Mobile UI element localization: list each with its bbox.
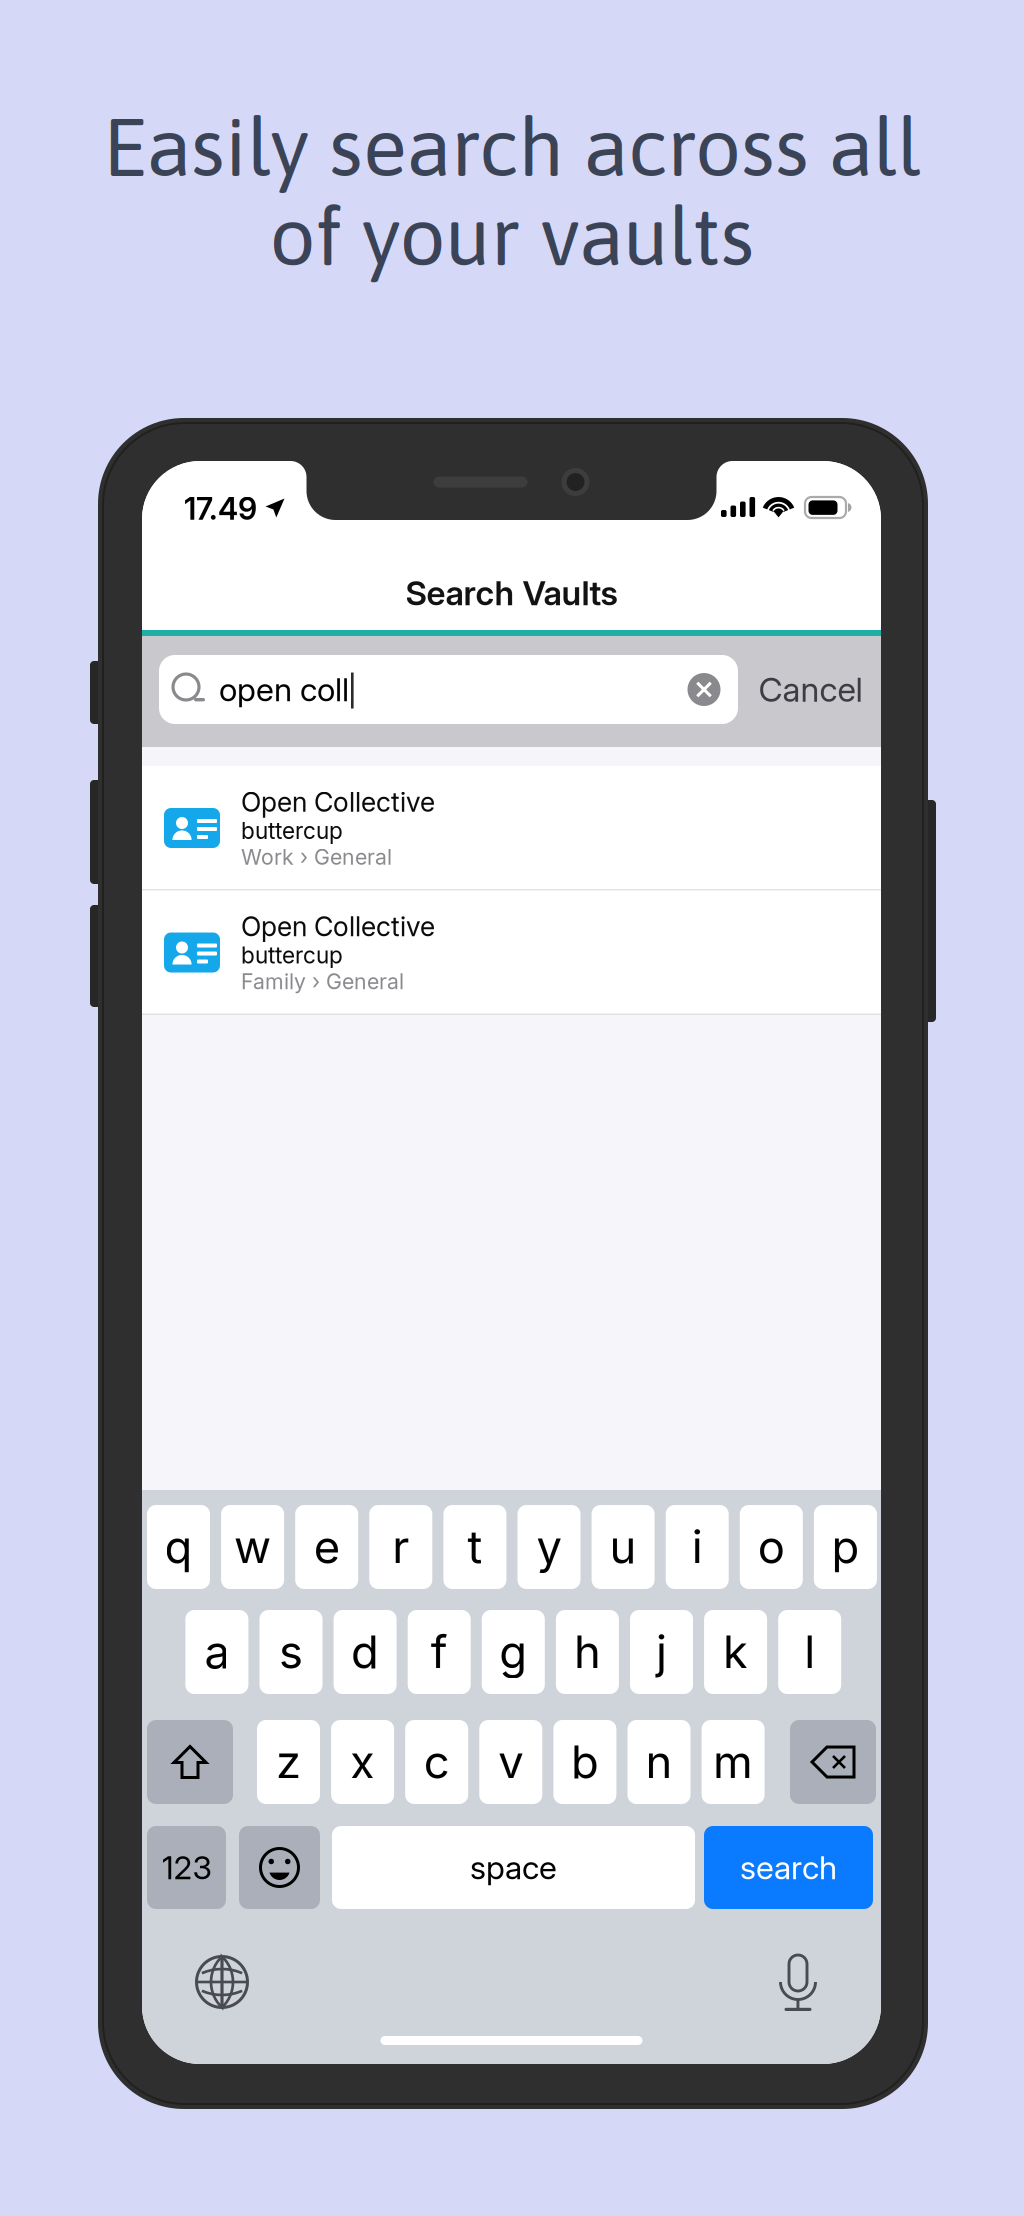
button[interactable]: Next keyboard: [196, 1956, 248, 2008]
staticText: l: [804, 1625, 815, 1679]
button[interactable]: space: [332, 1826, 695, 1909]
button[interactable]: n: [627, 1720, 690, 1804]
button[interactable]: m: [702, 1720, 765, 1804]
staticText: space: [470, 1848, 557, 1887]
button[interactable]: q: [147, 1505, 210, 1589]
staticText: u: [610, 1520, 637, 1574]
button[interactable]: search: [704, 1826, 873, 1909]
staticText: 123: [161, 1848, 211, 1887]
staticText: of your vaults: [269, 189, 754, 282]
button[interactable]: u: [592, 1505, 655, 1589]
button[interactable]: Emoji keyboard: [239, 1826, 320, 1909]
staticText: v: [498, 1735, 523, 1789]
button[interactable]: Cancel: [744, 655, 877, 724]
button[interactable]: t: [443, 1505, 506, 1589]
button[interactable]: w: [221, 1505, 284, 1589]
staticText: Family › General: [241, 968, 404, 994]
staticText: e: [314, 1520, 340, 1574]
staticText: b: [571, 1735, 599, 1789]
staticText: m: [713, 1735, 753, 1789]
staticText: z: [276, 1735, 301, 1789]
staticText: buttercup: [241, 817, 343, 844]
staticText: s: [279, 1625, 303, 1679]
staticText: r: [392, 1520, 409, 1574]
staticText: Work › General: [241, 844, 392, 870]
button[interactable]: i: [666, 1505, 729, 1589]
staticText: o: [758, 1520, 785, 1574]
staticText: j: [656, 1625, 667, 1679]
button[interactable]: r: [369, 1505, 432, 1589]
button[interactable]: y: [517, 1505, 580, 1589]
button[interactable]: o: [740, 1505, 803, 1589]
staticText: k: [723, 1625, 748, 1679]
button[interactable]: g: [482, 1610, 545, 1694]
staticText: i: [692, 1520, 703, 1574]
staticText: x: [350, 1735, 375, 1789]
staticText: 17.49: [184, 490, 257, 527]
staticText: Open Collective: [241, 910, 435, 943]
button[interactable]: f: [408, 1610, 471, 1694]
staticText: Easily search across all: [103, 100, 921, 193]
button[interactable]: Open Collective: [142, 766, 881, 889]
button[interactable]: a: [185, 1610, 248, 1694]
staticText: buttercup: [241, 941, 343, 969]
staticText: g: [499, 1625, 527, 1679]
button[interactable]: Clear text: [684, 669, 724, 709]
button[interactable]: d: [334, 1610, 397, 1694]
staticText: Search Vaults: [405, 573, 617, 613]
button[interactable]: Shift: [147, 1720, 233, 1804]
staticText: n: [645, 1735, 672, 1789]
staticText: open coll: [219, 670, 349, 709]
button[interactable]: 123: [147, 1826, 226, 1909]
button[interactable]: h: [556, 1610, 619, 1694]
button[interactable]: c: [405, 1720, 468, 1804]
button[interactable]: b: [553, 1720, 616, 1804]
staticText: search: [740, 1848, 837, 1887]
staticText: a: [204, 1625, 229, 1679]
staticText: y: [536, 1520, 561, 1574]
button[interactable]: k: [704, 1610, 767, 1694]
button[interactable]: e: [295, 1505, 358, 1589]
staticText: f: [431, 1625, 448, 1679]
button[interactable]: j: [630, 1610, 693, 1694]
button[interactable]: z: [257, 1720, 320, 1804]
button[interactable]: v: [479, 1720, 542, 1804]
staticText: h: [574, 1625, 601, 1679]
button[interactable]: s: [259, 1610, 322, 1694]
staticText: Open Collective: [241, 786, 435, 818]
staticText: t: [467, 1520, 482, 1574]
button[interactable]: x: [331, 1720, 394, 1804]
staticText: d: [351, 1625, 379, 1679]
staticText: w: [234, 1520, 271, 1574]
button[interactable]: l: [778, 1610, 841, 1694]
staticText: q: [164, 1520, 192, 1574]
button[interactable]: Dictation: [778, 1955, 818, 2013]
button[interactable]: p: [814, 1505, 877, 1589]
button[interactable]: Delete: [790, 1720, 876, 1804]
button[interactable]: Open Collective: [142, 890, 881, 1013]
staticText: Cancel: [758, 669, 862, 710]
staticText: p: [831, 1520, 859, 1574]
staticText: c: [424, 1735, 450, 1789]
